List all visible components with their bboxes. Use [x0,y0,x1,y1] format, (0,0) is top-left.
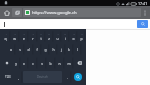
button[interactable]: , [14,70,22,84]
staticText: t [40,36,42,41]
button[interactable]: l [73,43,81,56]
staticText: 8 [64,33,66,36]
button[interactable]: Delete [73,56,85,70]
button[interactable]: v [37,56,46,70]
staticText: w [13,36,16,41]
button[interactable]: 6 [45,30,53,43]
staticText: 9 [73,33,75,36]
staticText: q [4,36,7,41]
button[interactable]: m [64,56,73,70]
staticText: p [80,36,83,41]
button[interactable]: 1 [1,30,10,43]
staticText: y [15,61,17,66]
button[interactable]: b [46,56,55,70]
staticText: 5 [40,33,42,36]
staticText: 0 [81,33,83,36]
staticText: e [23,36,25,41]
button[interactable]: d [24,43,33,56]
button[interactable]: . [63,70,71,84]
button[interactable]: n [55,56,64,70]
staticText: b [49,61,52,66]
staticText: v [41,61,43,66]
staticText: u [56,36,59,41]
staticText: Deutsch [37,75,48,79]
staticText: x [23,61,25,66]
staticText: c [32,61,34,66]
staticText: i [65,36,66,41]
button[interactable]: a [6,43,15,56]
button[interactable]: 4 [28,30,37,43]
button[interactable]: h [49,43,57,56]
staticText: 2 [14,33,16,36]
button[interactable]: https://www.google.ch [23,8,141,17]
staticText: l [77,47,78,52]
staticText: s [19,47,21,52]
staticText: 7 [57,33,59,36]
staticText: r [32,36,34,41]
staticText: 6 [48,33,50,36]
staticText: o [72,36,75,41]
button[interactable]: 8 [61,30,69,43]
button[interactable]: Shift [1,56,12,70]
staticText: d [27,47,30,52]
button[interactable]: s [15,43,24,56]
button[interactable]: y [12,56,20,70]
button[interactable]: x [20,56,28,70]
staticText: ?123 [5,75,11,79]
button[interactable]: Deutsch [23,71,62,83]
button[interactable]: More options [142,8,148,17]
button[interactable]: c [28,56,37,70]
staticText: 17:41 [138,1,148,6]
staticText: . [67,75,68,80]
staticText: g [44,47,47,52]
staticText: h [52,47,55,52]
button[interactable]: Home [2,8,11,17]
button[interactable]: 5 [37,30,45,43]
button[interactable]: Search [137,20,148,28]
staticText: n [58,61,61,66]
staticText: m [67,61,71,66]
button[interactable] [2,20,136,28]
staticText: 1 [5,33,7,36]
button[interactable]: j [57,43,65,56]
button[interactable]: Search [72,71,84,83]
staticText: a [10,47,12,52]
staticText: https://www.google.ch [32,10,77,16]
staticText: k [68,47,70,52]
button[interactable]: 0 [77,30,85,43]
button[interactable]: k [65,43,73,56]
button[interactable]: Tabs [12,8,22,17]
staticText: 3 [23,33,25,36]
button[interactable]: 2 [10,30,19,43]
button[interactable]: 9 [69,30,77,43]
staticText: j [61,47,62,52]
button[interactable]: Symbols [1,70,14,84]
staticText: 4 [32,33,34,36]
staticText: , [18,75,19,80]
button[interactable]: f [33,43,41,56]
button[interactable]: 3 [19,30,28,43]
staticText: z [48,36,50,41]
staticText: f [36,47,38,52]
button[interactable]: g [41,43,49,56]
button[interactable]: 7 [53,30,61,43]
